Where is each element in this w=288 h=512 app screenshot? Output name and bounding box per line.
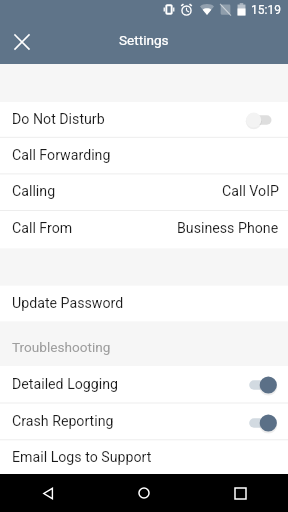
- staticText: Email Logs to Support: [12, 449, 152, 466]
- staticText: Update Password: [12, 295, 124, 312]
- button[interactable]: Home: [96, 474, 192, 512]
- button[interactable]: Email Logs to Support: [0, 440, 288, 477]
- staticText: Crash Reporting: [12, 413, 114, 430]
- staticText: Calling: [12, 183, 56, 200]
- staticText: Do Not Disturb: [12, 111, 105, 128]
- button[interactable]: Update Password: [0, 286, 288, 322]
- button[interactable]: Close: [8, 28, 36, 56]
- button[interactable]: Back: [0, 474, 96, 512]
- staticText: Call From: [12, 220, 73, 237]
- button[interactable]: Recents: [192, 474, 288, 512]
- staticText: Call VoIP: [222, 183, 279, 200]
- button[interactable]: Call From: [0, 211, 288, 248]
- staticText: Troubleshooting: [12, 339, 111, 355]
- staticText: Call Forwarding: [12, 147, 111, 164]
- staticText: Business Phone: [177, 220, 279, 237]
- button[interactable]: Do Not Disturb: [0, 102, 288, 138]
- button[interactable]: Call Forwarding: [0, 138, 288, 175]
- button[interactable]: Crash Reporting: [0, 404, 288, 441]
- staticText: Settings: [119, 32, 169, 48]
- button[interactable]: Calling: [0, 174, 288, 211]
- staticText: 15:19: [251, 3, 281, 17]
- button[interactable]: Detailed Logging: [0, 366, 288, 404]
- staticText: Detailed Logging: [12, 376, 119, 393]
